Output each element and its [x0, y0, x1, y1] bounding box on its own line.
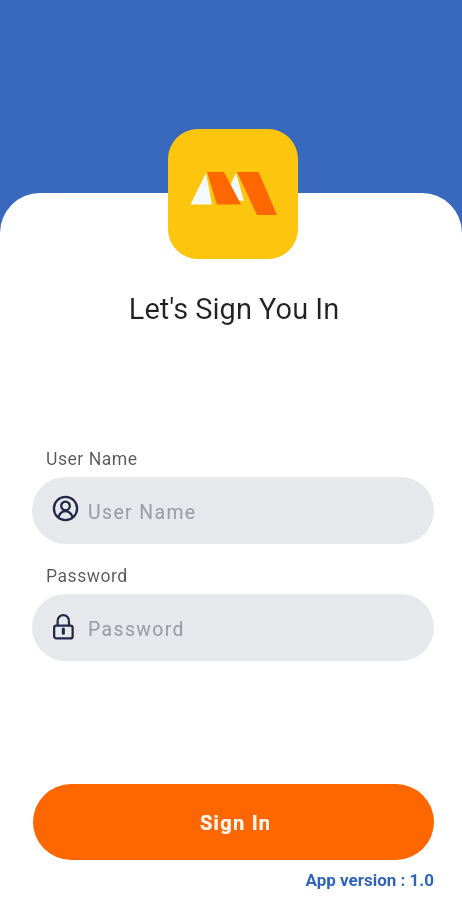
button[interactable]: App version : 1.0 [0, 870, 434, 890]
other: Password [53, 614, 74, 640]
staticText: User Name [46, 449, 138, 470]
staticText: Let's Sign You In [3, 292, 462, 326]
button[interactable]: Sign In [33, 784, 434, 860]
staticText: Sign In [200, 811, 272, 834]
staticText: Password [88, 618, 185, 641]
button[interactable]: User name [32, 477, 434, 544]
staticText: User Name [88, 501, 197, 524]
other: User name [53, 496, 79, 522]
button[interactable]: Password [32, 594, 434, 661]
staticText: Password [46, 566, 128, 587]
